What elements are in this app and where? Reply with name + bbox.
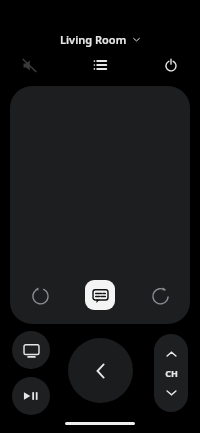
button[interactable]: Power bbox=[158, 52, 184, 78]
button[interactable]: Rewind 10 seconds bbox=[26, 281, 54, 309]
button[interactable] bbox=[10, 86, 190, 324]
staticText: CH bbox=[165, 367, 178, 379]
button[interactable]: Living Room bbox=[52, 29, 149, 50]
button[interactable]: Input source bbox=[12, 331, 50, 369]
button[interactable]: Mute bbox=[16, 52, 42, 78]
button[interactable]: Channel down bbox=[154, 379, 188, 405]
button[interactable]: Channel up bbox=[154, 341, 188, 367]
button[interactable]: Back bbox=[68, 338, 133, 403]
button[interactable]: Channel list bbox=[87, 52, 113, 78]
button[interactable]: Play or pause bbox=[12, 377, 50, 415]
button[interactable]: Closed captions bbox=[85, 280, 115, 310]
staticText: Living Room bbox=[60, 32, 127, 47]
button[interactable]: Forward 10 seconds bbox=[146, 281, 174, 309]
